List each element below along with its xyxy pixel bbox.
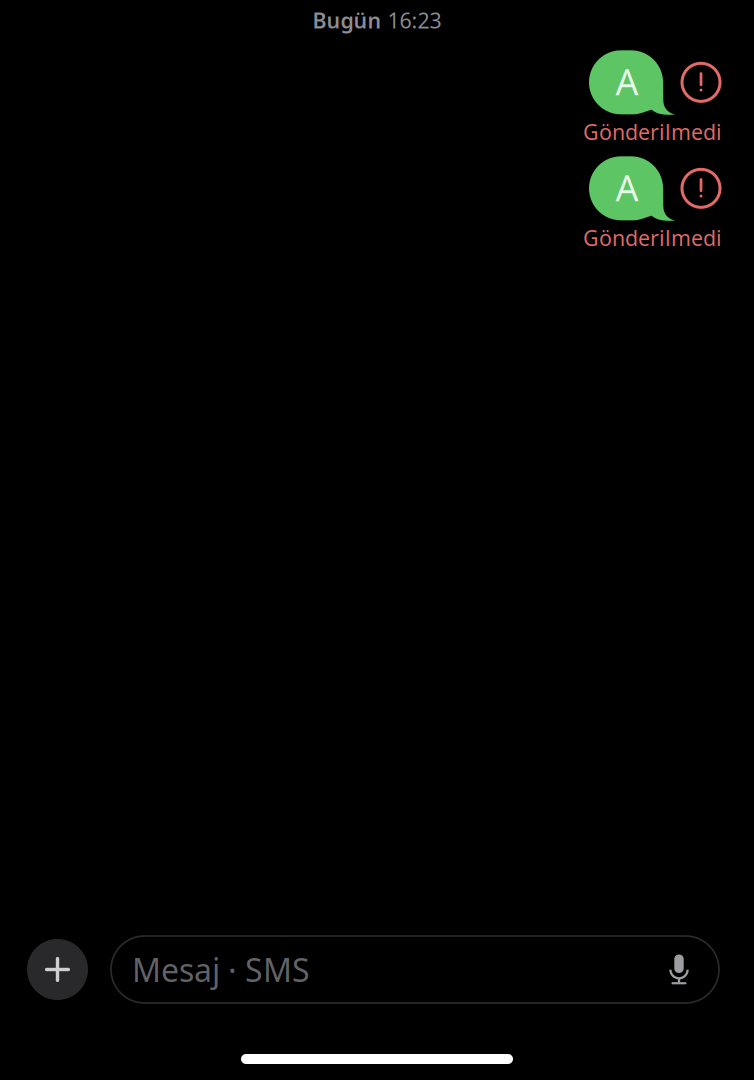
button[interactable]: Gönderilmedi — yeniden dene [682, 169, 720, 207]
staticText: Bugün 16:23 [312, 6, 441, 34]
button[interactable]: Gönderilmedi [583, 228, 722, 247]
button[interactable]: A [589, 50, 673, 114]
staticText: Gönderilmedi [583, 224, 722, 252]
button[interactable]: Sesli mesaj [655, 940, 703, 998]
button[interactable]: A [589, 156, 673, 220]
staticText: A [615, 57, 638, 105]
button[interactable]: Ekle [27, 939, 88, 1000]
staticText: Mesaj · SMS [132, 948, 310, 991]
button[interactable]: Gönderilmedi [583, 122, 722, 141]
button[interactable]: Gönderilmedi — yeniden dene [682, 63, 720, 101]
button[interactable]: Mesaj · SMS [132, 940, 310, 998]
staticText: Gönderilmedi [583, 118, 722, 146]
staticText: A [615, 163, 638, 211]
